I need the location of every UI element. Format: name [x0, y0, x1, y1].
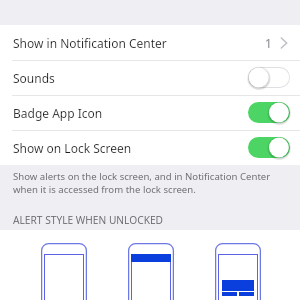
button[interactable]: Sounds [0, 60, 300, 95]
button[interactable]: On [248, 102, 290, 123]
staticText: Show on Lock Screen [13, 140, 132, 156]
button[interactable]: Show in Notification Center [0, 25, 300, 60]
button[interactable]: Banners [128, 243, 174, 300]
button[interactable]: None [41, 243, 87, 300]
staticText: Badge App Icon [13, 105, 103, 121]
button[interactable]: Show on Lock Screen [0, 130, 300, 165]
staticText: 1 [265, 35, 272, 51]
staticText: ALERT STYLE WHEN UNLOCKED [13, 213, 164, 227]
button[interactable]: Badge App Icon [0, 95, 300, 130]
button[interactable]: On [248, 137, 290, 158]
button[interactable]: Alerts [215, 243, 261, 300]
staticText: Sounds [13, 70, 55, 86]
staticText: Show in Notification Center [13, 35, 167, 51]
staticText: Show alerts on the lock screen, and in N… [13, 170, 271, 196]
button[interactable]: Open [278, 35, 290, 51]
button[interactable]: Off [248, 67, 290, 88]
